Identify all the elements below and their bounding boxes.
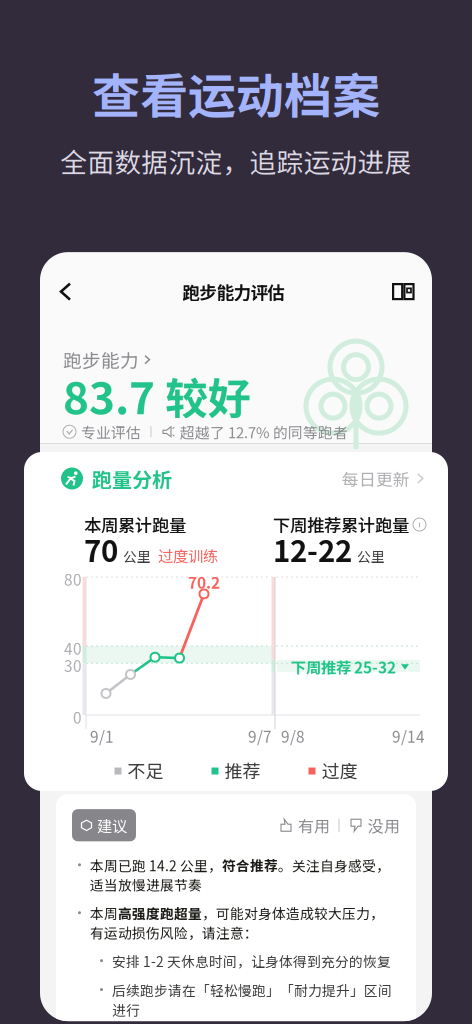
- staticText: 公里: [357, 546, 385, 566]
- staticText: 建议: [97, 814, 127, 836]
- staticText: 9/8: [281, 725, 305, 747]
- staticText: 每日更新: [342, 466, 410, 490]
- staticText: 不足: [127, 757, 163, 783]
- staticText: 70: [84, 528, 118, 570]
- staticText: 9/1: [90, 725, 114, 747]
- button[interactable]: 跑步能力: [63, 346, 151, 373]
- button[interactable]: 返回: [49, 272, 83, 312]
- staticText: 推荐: [224, 757, 260, 783]
- staticText: 本周已跑 14.2 公里，符合推荐。关注自身感受，适当放慢进展节奏: [90, 855, 390, 894]
- button[interactable]: 没用: [349, 814, 400, 837]
- button[interactable]: 有用: [279, 814, 330, 837]
- staticText: 安排 1-2 天休息时间，让身体得到充分的恢复: [112, 951, 391, 971]
- staticText: 跑量分析: [92, 464, 172, 493]
- staticText: 过度: [321, 757, 357, 783]
- staticText: 0: [73, 706, 82, 728]
- staticText: 全面数据沉淀，追踪运动进展: [60, 141, 411, 180]
- staticText: 本周高强度跑超量，可能对身体造成较大压力，有运动损伤风险，请注意：: [90, 903, 384, 942]
- staticText: 9/14: [392, 725, 425, 747]
- staticText: 过度训练: [158, 544, 218, 566]
- staticText: 80: [64, 568, 82, 590]
- staticText: 查看运动档案: [92, 58, 380, 127]
- staticText: 12-22: [273, 528, 352, 570]
- staticText: 9/7: [248, 725, 272, 747]
- staticText: 专业评估: [81, 421, 141, 442]
- staticText: 83.7: [63, 363, 155, 427]
- staticText: 较好: [165, 365, 251, 426]
- staticText: 跑步能力: [63, 346, 139, 373]
- staticText: 后续跑步请在「轻松慢跑」「耐力提升」区间进行: [112, 980, 392, 1020]
- staticText: 超越了 12.7% 的同等跑者: [180, 421, 348, 442]
- staticText: 有用: [298, 814, 330, 837]
- button[interactable]: 运动档案: [384, 272, 423, 311]
- staticText: 公里: [123, 546, 151, 566]
- staticText: 40: [64, 637, 82, 659]
- staticText: 下周推荐累计跑量: [273, 512, 409, 537]
- staticText: 下周推荐 25-32: [291, 656, 396, 678]
- staticText: 本周累计跑量: [84, 512, 186, 537]
- staticText: 30: [64, 654, 82, 676]
- button[interactable]: 每日更新: [342, 466, 424, 490]
- staticText: 没用: [368, 814, 400, 837]
- staticText: 70.2: [188, 571, 220, 593]
- staticText: 跑步能力评估: [182, 279, 284, 304]
